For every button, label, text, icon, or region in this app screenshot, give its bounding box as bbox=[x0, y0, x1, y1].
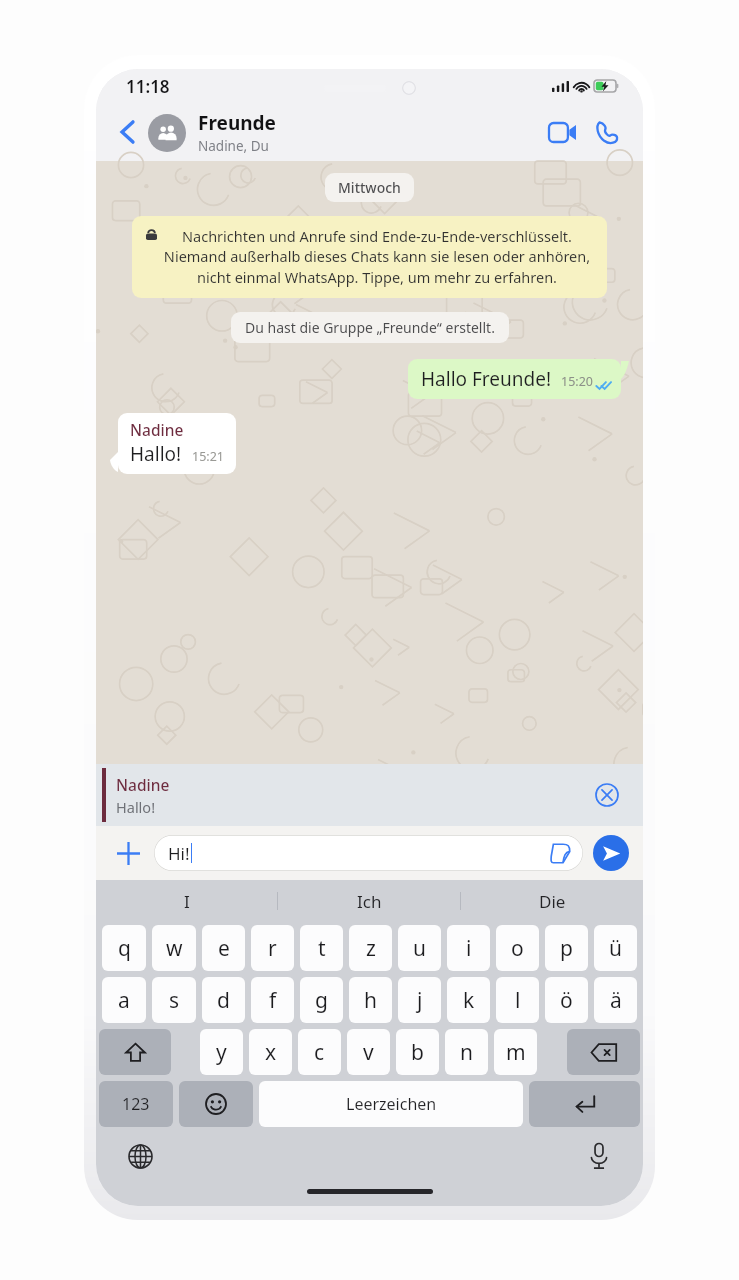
button[interactable]: Stickers bbox=[547, 840, 573, 866]
button[interactable]: Hallo Freunde! bbox=[408, 359, 629, 399]
staticText: k bbox=[463, 986, 475, 1015]
button[interactable] bbox=[529, 1081, 640, 1127]
staticText: s bbox=[169, 986, 180, 1015]
staticText: Nadine, Du bbox=[198, 137, 269, 155]
button[interactable]: w bbox=[152, 925, 196, 971]
staticText: e bbox=[218, 934, 230, 963]
button[interactable]: Leerzeichen bbox=[259, 1081, 523, 1127]
button[interactable]: Hi! bbox=[154, 835, 583, 871]
staticText: r bbox=[268, 934, 277, 963]
button[interactable]: ä bbox=[594, 977, 637, 1023]
button[interactable]: Dictate bbox=[581, 1138, 617, 1174]
staticText: l bbox=[515, 986, 521, 1015]
staticText: 11:18 bbox=[126, 75, 170, 98]
button[interactable]: b bbox=[396, 1029, 439, 1075]
button[interactable]: Freunde bbox=[148, 110, 543, 155]
staticText: y bbox=[216, 1038, 227, 1067]
button[interactable]: q bbox=[102, 925, 146, 971]
staticText: Hallo! bbox=[116, 797, 156, 817]
staticText: d bbox=[217, 986, 230, 1015]
button[interactable]: Video call bbox=[543, 113, 581, 151]
staticText: m bbox=[506, 1038, 526, 1067]
button[interactable]: Nachrichten und Anrufe sind Ende-zu-Ende… bbox=[132, 216, 607, 298]
button[interactable]: z bbox=[349, 925, 392, 971]
staticText: b bbox=[411, 1038, 424, 1067]
staticText: p bbox=[560, 934, 573, 963]
staticText: g bbox=[315, 986, 328, 1015]
staticText: n bbox=[460, 1038, 473, 1067]
staticText: I bbox=[184, 890, 190, 913]
button[interactable]: n bbox=[445, 1029, 488, 1075]
button[interactable]: Close reply bbox=[593, 781, 621, 809]
button[interactable]: Die bbox=[461, 880, 643, 922]
button[interactable]: Attach bbox=[110, 835, 146, 871]
button[interactable] bbox=[179, 1081, 253, 1127]
staticText: Du hast die Gruppe „Freunde“ erstellt. bbox=[245, 318, 495, 337]
staticText: Nadine bbox=[130, 419, 184, 440]
button[interactable]: m bbox=[494, 1029, 537, 1075]
staticText: 15:21 bbox=[192, 448, 224, 465]
button[interactable]: o bbox=[496, 925, 539, 971]
button[interactable]: Back bbox=[110, 115, 144, 149]
staticText: Ich bbox=[357, 890, 382, 913]
staticText: Mittwoch bbox=[338, 178, 401, 197]
button[interactable]: g bbox=[300, 977, 343, 1023]
staticText: o bbox=[511, 934, 524, 963]
button[interactable]: d bbox=[202, 977, 245, 1023]
staticText: f bbox=[269, 986, 277, 1015]
button[interactable]: y bbox=[200, 1029, 243, 1075]
staticText: v bbox=[363, 1038, 374, 1067]
button[interactable]: Nadine bbox=[110, 413, 236, 474]
staticText: x bbox=[265, 1038, 277, 1067]
button[interactable]: Send bbox=[593, 835, 629, 871]
button[interactable] bbox=[99, 1029, 171, 1075]
button[interactable]: s bbox=[152, 977, 196, 1023]
staticText: j bbox=[417, 986, 423, 1015]
staticText: Nadine bbox=[116, 774, 170, 795]
button[interactable] bbox=[567, 1029, 640, 1075]
button[interactable]: h bbox=[349, 977, 392, 1023]
staticText: c bbox=[314, 1038, 325, 1067]
staticText: ü bbox=[609, 934, 622, 963]
staticText: Freunde bbox=[198, 110, 276, 136]
staticText: a bbox=[118, 986, 130, 1015]
staticText: w bbox=[166, 934, 183, 963]
staticText: u bbox=[413, 934, 426, 963]
button[interactable]: 123 bbox=[99, 1081, 173, 1127]
staticText: i bbox=[466, 934, 472, 963]
button[interactable]: v bbox=[347, 1029, 390, 1075]
button[interactable]: u bbox=[398, 925, 441, 971]
button[interactable]: k bbox=[447, 977, 490, 1023]
button[interactable]: Voice call bbox=[587, 113, 625, 151]
button[interactable]: i bbox=[447, 925, 490, 971]
button[interactable]: j bbox=[398, 977, 441, 1023]
button[interactable]: c bbox=[298, 1029, 341, 1075]
staticText: t bbox=[318, 934, 326, 963]
staticText: 15:20 bbox=[561, 373, 593, 390]
staticText: Hi! bbox=[168, 842, 190, 865]
staticText: 123 bbox=[122, 1093, 150, 1115]
button[interactable]: Ich bbox=[278, 880, 460, 922]
button[interactable]: a bbox=[102, 977, 146, 1023]
staticText: Die bbox=[539, 890, 566, 913]
staticText: Leerzeichen bbox=[346, 1093, 437, 1115]
button[interactable]: x bbox=[249, 1029, 292, 1075]
staticText: Nachrichten und Anrufe sind Ende-zu-Ende… bbox=[161, 226, 593, 288]
staticText: Hallo Freunde! bbox=[421, 366, 552, 392]
staticText: ä bbox=[610, 986, 622, 1015]
staticText: ö bbox=[560, 986, 573, 1015]
button[interactable]: I bbox=[96, 880, 277, 922]
staticText: h bbox=[364, 986, 377, 1015]
button[interactable]: ö bbox=[545, 977, 588, 1023]
staticText: q bbox=[118, 934, 131, 963]
staticText: Hallo! bbox=[130, 441, 182, 467]
button[interactable]: p bbox=[545, 925, 588, 971]
button[interactable]: r bbox=[251, 925, 294, 971]
staticText: z bbox=[366, 934, 376, 963]
button[interactable]: Change keyboard bbox=[122, 1138, 158, 1174]
button[interactable]: t bbox=[300, 925, 343, 971]
button[interactable]: l bbox=[496, 977, 539, 1023]
button[interactable]: ü bbox=[594, 925, 637, 971]
button[interactable]: e bbox=[202, 925, 245, 971]
button[interactable]: f bbox=[251, 977, 294, 1023]
